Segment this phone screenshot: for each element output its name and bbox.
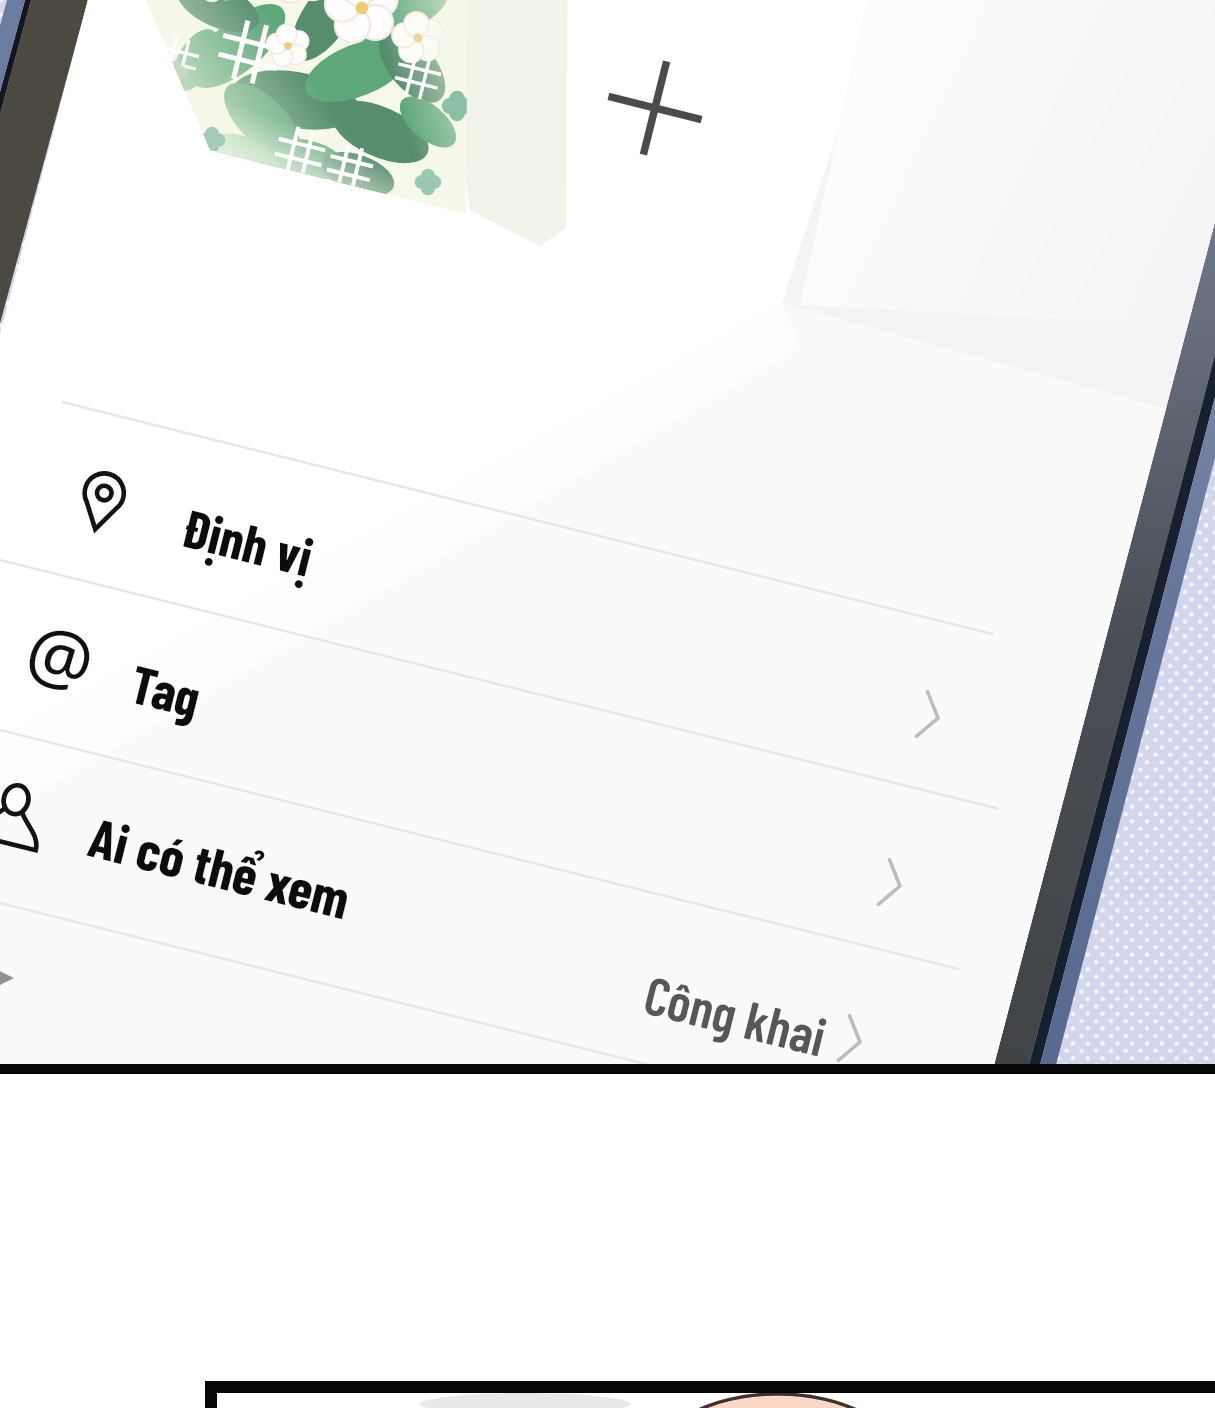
button[interactable]: Post composer options: [0, 0, 1215, 1408]
